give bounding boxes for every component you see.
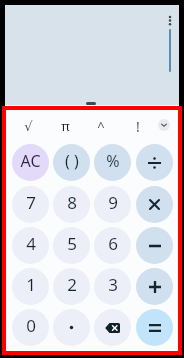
- staticText: √: [24, 119, 33, 134]
- staticText: 9: [108, 191, 118, 214]
- button[interactable]: 9: [94, 186, 131, 223]
- staticText: 5: [67, 232, 77, 255]
- button[interactable]: Pi: [50, 111, 80, 139]
- staticText: 6: [108, 232, 118, 255]
- staticText: 7: [26, 191, 36, 214]
- staticText: 3: [108, 273, 118, 296]
- button[interactable]: Equals: [136, 309, 173, 346]
- button[interactable]: Plus: [136, 268, 173, 305]
- button[interactable]: Decimal point: [53, 309, 90, 346]
- staticText: %: [106, 150, 120, 172]
- staticText: 1: [26, 273, 36, 296]
- button[interactable]: Backspace: [94, 309, 131, 346]
- staticText: ( ): [65, 150, 79, 172]
- button[interactable]: AC: [12, 144, 49, 181]
- staticText: 8: [67, 191, 77, 214]
- button[interactable]: 2: [53, 268, 90, 305]
- button[interactable]: 3: [94, 268, 131, 305]
- button[interactable]: Divide: [136, 144, 173, 181]
- button[interactable]: Power: [86, 111, 116, 139]
- button[interactable]: More options: [158, 8, 182, 32]
- button[interactable]: 5: [53, 227, 90, 264]
- staticText: π: [61, 117, 70, 135]
- button[interactable]: Multiply: [136, 186, 173, 223]
- button[interactable]: Square root: [13, 111, 43, 139]
- staticText: 0: [26, 314, 36, 337]
- button[interactable]: Factorial: [123, 111, 153, 139]
- button[interactable]: %: [94, 144, 131, 181]
- staticText: ^: [97, 117, 105, 135]
- button[interactable]: ( ): [53, 144, 90, 181]
- button[interactable]: 6: [94, 227, 131, 264]
- button[interactable]: 8: [53, 186, 90, 223]
- button[interactable]: Show more functions: [158, 119, 170, 131]
- staticText: !: [136, 117, 140, 136]
- button[interactable]: 0: [12, 309, 49, 346]
- button[interactable]: 4: [12, 227, 49, 264]
- button[interactable]: 7: [12, 186, 49, 223]
- staticText: 2: [67, 273, 77, 296]
- button[interactable]: Minus: [136, 227, 173, 264]
- staticText: AC: [20, 150, 41, 172]
- staticText: 4: [26, 232, 36, 255]
- button[interactable]: 1: [12, 268, 49, 305]
